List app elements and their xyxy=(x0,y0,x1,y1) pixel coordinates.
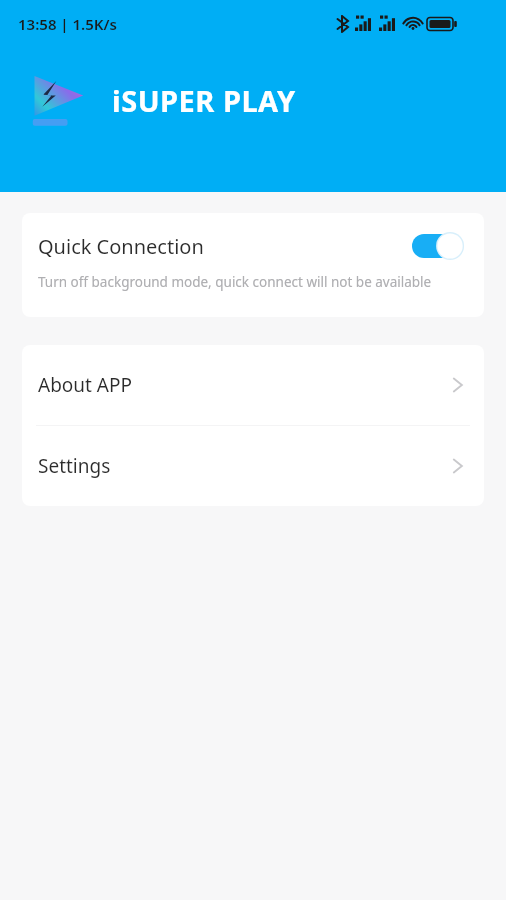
button[interactable]: Quick Connection toggle xyxy=(412,231,468,261)
staticText: iSUPER PLAY xyxy=(112,81,296,120)
button[interactable]: About APP xyxy=(22,345,484,425)
staticText: Turn off background mode, quick connect … xyxy=(38,273,432,291)
staticText: About APP xyxy=(38,372,132,398)
staticText: 13:58 | 1.5K/s xyxy=(18,14,117,34)
button[interactable]: Settings xyxy=(22,426,484,506)
staticText: Settings xyxy=(38,453,111,479)
staticText: Quick Connection xyxy=(38,233,204,260)
